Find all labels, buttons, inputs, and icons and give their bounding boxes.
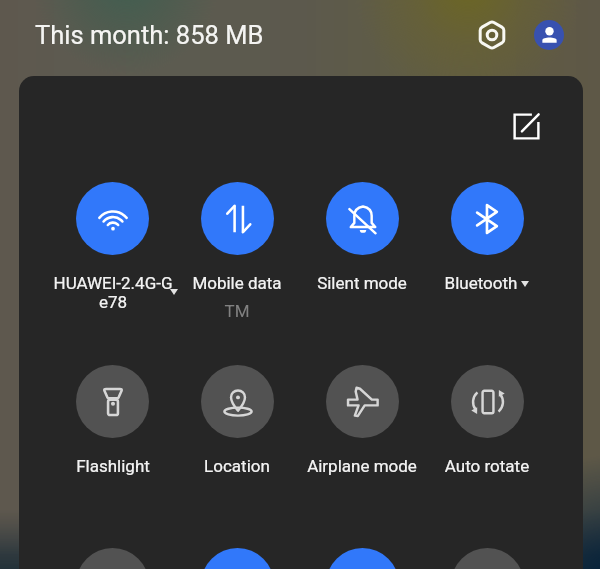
button[interactable]: HUAWEI-2.4G-G e78 xyxy=(51,273,175,312)
button[interactable]: Bluetooth xyxy=(419,273,543,293)
button[interactable]: Edit xyxy=(504,104,549,149)
button[interactable]: Mobile data xyxy=(201,182,274,255)
button[interactable]: Wi-Fi xyxy=(76,182,149,255)
button[interactable]: Flashlight xyxy=(76,365,149,438)
button[interactable]: Bluetooth xyxy=(451,182,524,255)
staticText: Silent mode xyxy=(300,273,424,293)
button[interactable]: Screenshot xyxy=(326,548,399,569)
staticText: Flashlight xyxy=(51,456,175,476)
button[interactable]: Screen recorder xyxy=(76,548,149,569)
staticText: Auto rotate xyxy=(425,456,549,476)
button[interactable]: Settings xyxy=(469,12,514,57)
button[interactable]: Airplane mode xyxy=(300,456,424,476)
button[interactable]: Flashlight xyxy=(51,456,175,476)
staticText: Location xyxy=(175,456,299,476)
staticText: Airplane mode xyxy=(300,456,424,476)
button[interactable]: User account xyxy=(534,20,564,50)
button[interactable]: Auto rotate xyxy=(451,365,524,438)
button[interactable]: This month: 858 MB xyxy=(35,20,264,50)
button[interactable]: Hotspot xyxy=(451,548,524,569)
staticText: TM xyxy=(175,301,299,321)
button[interactable]: Auto rotate xyxy=(425,456,549,476)
staticText: This month: 858 MB xyxy=(35,20,264,50)
staticText: Bluetooth xyxy=(419,273,543,293)
button[interactable]: Airplane mode xyxy=(326,365,399,438)
button[interactable]: Silent mode xyxy=(300,273,424,293)
button[interactable]: Sound xyxy=(201,548,274,569)
button[interactable]: Location xyxy=(175,456,299,476)
staticText: HUAWEI-2.4G-G e78 xyxy=(51,273,175,312)
button[interactable]: Location xyxy=(201,365,274,438)
button[interactable]: Mobile data xyxy=(175,273,299,293)
button[interactable]: Silent mode xyxy=(326,182,399,255)
staticText: Mobile data xyxy=(175,273,299,293)
